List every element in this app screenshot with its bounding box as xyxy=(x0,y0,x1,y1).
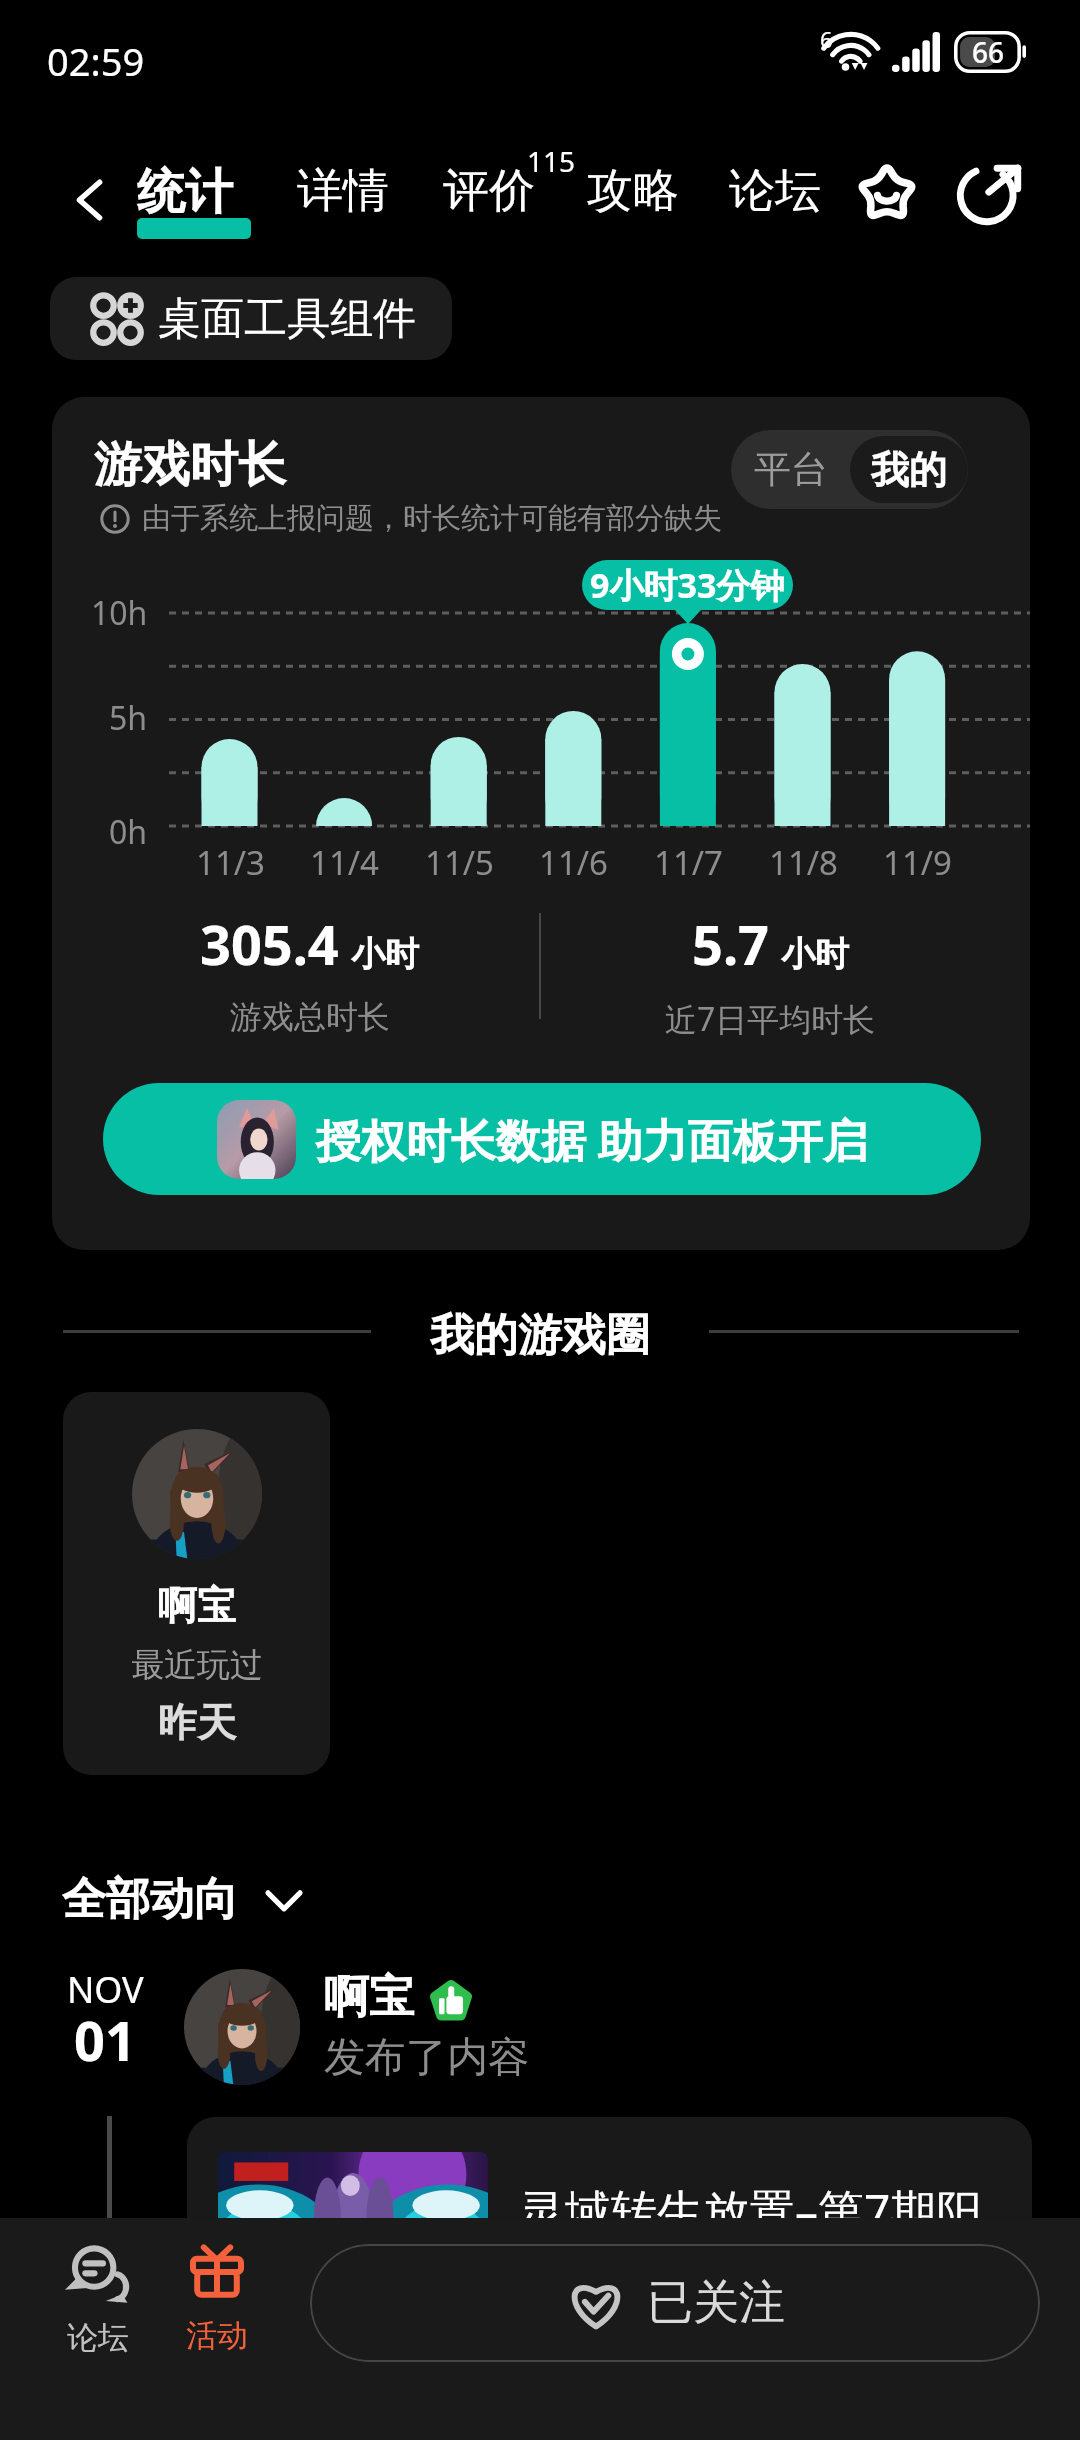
button[interactable]: 啊宝 xyxy=(63,1392,330,1775)
button[interactable]: 平台 xyxy=(731,430,850,509)
staticText: 11/6 xyxy=(539,840,608,885)
staticText: 发布了内容 xyxy=(324,2032,529,2084)
staticText: 11/7 xyxy=(654,840,723,885)
staticText: 我的 xyxy=(871,446,947,494)
button[interactable]: 桌面工具组件 xyxy=(50,277,452,360)
staticText: 详情 xyxy=(297,162,389,220)
staticText: 02:59 xyxy=(47,35,145,87)
staticText: 啊宝 xyxy=(324,1969,414,2026)
staticText: 9小时33分钟 xyxy=(590,562,785,608)
staticText: 11/9 xyxy=(883,840,952,885)
staticText: 桌面工具组件 xyxy=(158,292,416,346)
staticText: NOV xyxy=(67,1965,144,2014)
staticText: 由于系统上报问题，时长统计可能有部分缺失 xyxy=(142,500,722,537)
staticText: 游戏总时长 xyxy=(230,997,390,1037)
staticText: 论坛 xyxy=(67,2318,129,2357)
button[interactable]: 统计 xyxy=(137,162,251,222)
button[interactable]: 评价 xyxy=(443,162,535,220)
staticText: 攻略 xyxy=(587,162,679,220)
staticText: 游戏时长 xyxy=(94,435,286,495)
button[interactable]: 论坛 xyxy=(729,162,821,220)
staticText: 平台 xyxy=(754,446,828,493)
staticText: 授权时长数据 助力面板开启 xyxy=(316,1109,868,1170)
staticText: 昨天 xyxy=(158,1698,236,1747)
staticText: 5.7 xyxy=(692,907,769,981)
staticText: 01 xyxy=(74,2003,136,2077)
staticText: 11/3 xyxy=(196,840,265,885)
staticText: 已关注 xyxy=(647,2274,785,2332)
staticText: 统计 xyxy=(137,162,233,222)
staticText: 10h xyxy=(91,591,148,635)
button[interactable]: 授权时长数据 助力面板开启 xyxy=(103,1083,981,1195)
staticText: 近7日平均时长 xyxy=(665,997,876,1041)
staticText: 我的游戏圈 xyxy=(430,1308,650,1363)
staticText: 论坛 xyxy=(729,162,821,220)
button[interactable]: Back xyxy=(50,160,130,240)
button[interactable]: 灵域转生放置–第7期阳 xyxy=(187,2117,1032,2377)
button[interactable]: 详情 xyxy=(297,162,389,220)
staticText: 灵域转生放置–第7期阳 xyxy=(519,2179,983,2242)
staticText: 最近玩过 xyxy=(131,1644,263,1686)
button[interactable]: 论坛 xyxy=(36,2242,160,2357)
staticText: 全部动向 xyxy=(62,1872,238,1927)
staticText: 11/4 xyxy=(310,840,379,885)
staticText: 活动 xyxy=(186,2316,248,2355)
button[interactable]: 已关注 xyxy=(310,2244,1040,2362)
staticText: 0h xyxy=(109,810,148,854)
staticText: 5h xyxy=(109,696,148,740)
staticText: 11/5 xyxy=(425,840,494,885)
button[interactable]: 攻略 xyxy=(587,162,679,220)
button[interactable]: Favorite xyxy=(845,150,929,234)
button[interactable]: 我的 xyxy=(850,436,968,503)
button[interactable]: 活动 xyxy=(155,2242,279,2355)
staticText: 小时 xyxy=(781,933,849,976)
staticText: 评价 xyxy=(443,162,535,220)
staticText: 6 xyxy=(820,24,833,54)
button[interactable]: Share xyxy=(948,150,1032,234)
staticText: 啊宝 xyxy=(158,1581,236,1630)
staticText: 66 xyxy=(972,33,1005,71)
staticText: 305.4 xyxy=(200,907,339,981)
staticText: 11/8 xyxy=(769,840,838,885)
staticText: 小时 xyxy=(351,933,419,976)
staticText: 115 xyxy=(527,142,576,180)
button[interactable]: 全部动向 xyxy=(62,1872,304,1927)
